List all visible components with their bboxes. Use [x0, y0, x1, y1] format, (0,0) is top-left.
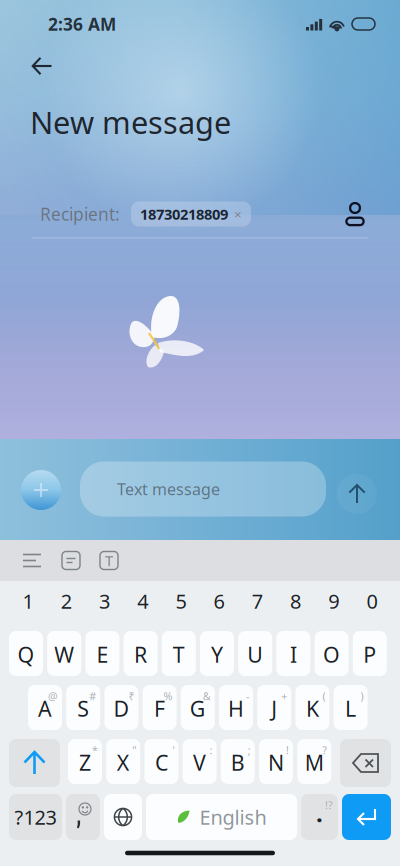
button[interactable]: C — [144, 739, 178, 784]
staticText: M — [305, 748, 324, 777]
button[interactable]: Add attachment — [21, 470, 61, 510]
button[interactable]: E — [85, 631, 119, 676]
button[interactable]: . — [301, 794, 338, 840]
staticText: 7 — [252, 588, 263, 614]
staticText: + — [281, 689, 287, 703]
button[interactable]: N — [259, 739, 293, 784]
staticText: ! — [286, 743, 289, 757]
button[interactable]: K — [295, 685, 329, 730]
staticText: !? — [325, 798, 333, 812]
staticText: R — [134, 640, 147, 669]
button[interactable]: A — [28, 685, 62, 730]
button[interactable]: ?123 — [9, 794, 62, 840]
staticText: F — [154, 694, 165, 723]
staticText: Y — [211, 640, 223, 669]
button[interactable]: 5 — [162, 583, 200, 619]
button[interactable]: English — [146, 794, 297, 840]
staticText: ; — [248, 743, 251, 757]
staticText: T — [105, 551, 113, 570]
staticText: ? — [322, 743, 327, 757]
staticText: U — [247, 640, 263, 669]
button[interactable]: I — [276, 631, 310, 676]
staticText: ?123 — [14, 804, 56, 830]
staticText: × — [234, 205, 242, 223]
button[interactable]: 2 — [47, 583, 85, 619]
button[interactable]: F — [143, 685, 177, 730]
button[interactable]: Choose contact — [344, 201, 366, 226]
staticText: 4 — [137, 588, 148, 614]
staticText: W — [54, 640, 74, 669]
staticText: 5 — [175, 588, 186, 614]
staticText: . — [316, 797, 323, 829]
staticText: K — [306, 694, 319, 723]
staticText: X — [117, 748, 130, 777]
button[interactable]: 18730218809 — [131, 201, 251, 226]
staticText: J — [271, 694, 277, 723]
button[interactable]: Text style — [90, 541, 128, 579]
button[interactable]: D — [104, 685, 138, 730]
button[interactable]: Clipboard — [52, 541, 90, 579]
button[interactable] — [104, 794, 142, 840]
button[interactable] — [9, 739, 60, 787]
button[interactable]: Z — [68, 739, 102, 784]
staticText: ' — [172, 743, 174, 757]
button[interactable]: Y — [200, 631, 234, 676]
button[interactable]: 3 — [85, 583, 124, 619]
staticText: 6 — [214, 588, 225, 614]
button[interactable] — [342, 794, 391, 840]
button[interactable]: H — [219, 685, 253, 730]
staticText: B — [231, 748, 245, 777]
button[interactable]: S — [66, 685, 100, 730]
staticText: E — [96, 640, 108, 669]
button[interactable]: Menu — [12, 541, 52, 579]
staticText: ) — [361, 689, 364, 703]
button[interactable]: G — [181, 685, 215, 730]
button[interactable]: W — [47, 631, 81, 676]
staticText: L — [345, 694, 356, 723]
staticText: * — [92, 743, 98, 757]
button[interactable]: L — [334, 685, 368, 730]
button[interactable]: 6 — [200, 583, 238, 619]
button[interactable]: M — [297, 739, 331, 784]
staticText: Text message — [117, 478, 220, 500]
staticText: N — [268, 748, 284, 777]
staticText: O — [323, 640, 340, 669]
button[interactable]: 4 — [124, 583, 162, 619]
button[interactable] — [340, 739, 391, 787]
button[interactable]: 0 — [353, 583, 391, 619]
staticText: English — [199, 804, 266, 830]
staticText: T — [173, 640, 185, 669]
staticText: ₹ — [128, 689, 134, 703]
button[interactable]: U — [238, 631, 272, 676]
button[interactable]: V — [183, 739, 217, 784]
staticText: Z — [79, 748, 91, 777]
staticText: 3 — [99, 588, 110, 614]
button[interactable]: Send — [337, 474, 377, 514]
button[interactable]: J — [257, 685, 291, 730]
button[interactable]: R — [124, 631, 158, 676]
button[interactable]: 1 — [9, 583, 47, 619]
staticText: 1 — [23, 588, 34, 614]
button[interactable]: X — [106, 739, 140, 784]
staticText: P — [363, 640, 376, 669]
button[interactable]: T — [162, 631, 196, 676]
staticText: 2 — [61, 588, 72, 614]
button[interactable]: P — [353, 631, 387, 676]
staticText: A — [38, 694, 52, 723]
staticText: New message — [30, 102, 231, 142]
button[interactable]: Back — [19, 46, 65, 86]
button[interactable] — [66, 794, 100, 840]
staticText: D — [113, 694, 129, 723]
staticText: - — [246, 689, 249, 703]
button[interactable]: O — [315, 631, 349, 676]
button[interactable]: B — [221, 739, 255, 784]
staticText: @ — [48, 689, 58, 703]
staticText: " — [132, 743, 136, 757]
button[interactable]: Text message — [80, 461, 326, 516]
button[interactable]: 9 — [315, 583, 353, 619]
staticText: S — [77, 694, 89, 723]
staticText: 9 — [328, 588, 339, 614]
button[interactable]: 7 — [238, 583, 276, 619]
button[interactable]: 8 — [276, 583, 315, 619]
button[interactable]: Q — [9, 631, 43, 676]
